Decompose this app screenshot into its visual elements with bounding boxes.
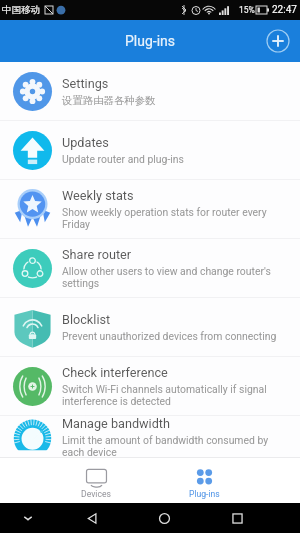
button[interactable]: Updates (0, 121, 300, 180)
staticText: Limit the amount of bandwidth consumed b… (62, 434, 286, 457)
button[interactable]: Recents (201, 512, 274, 525)
staticText: Allow other users to view and change rou… (62, 265, 286, 290)
button[interactable]: Settings (0, 62, 300, 121)
button[interactable]: Manage bandwidth (0, 416, 300, 457)
button[interactable]: Plug-ins (150, 463, 258, 499)
staticText: Blocklist (62, 312, 111, 327)
button[interactable]: Blocklist (0, 298, 300, 357)
staticText: Plug-ins (125, 33, 176, 49)
staticText: 15% (239, 5, 255, 15)
button[interactable]: Hide (0, 511, 56, 525)
staticText: 22:47 (272, 4, 297, 16)
staticText: Show weekly operation stats for router e… (62, 206, 286, 231)
button[interactable]: Back (56, 512, 128, 525)
staticText: Updates (62, 135, 109, 150)
staticText: Settings (62, 76, 109, 91)
button[interactable]: Devices (42, 463, 150, 499)
staticText: 设置路由器各种参数 (62, 94, 156, 107)
staticText: Prevent unauthorized devices from connec… (62, 330, 277, 342)
staticText: Devices (81, 489, 111, 499)
staticText: Switch Wi-Fi channels automatically if s… (62, 383, 286, 408)
staticText: Weekly stats (62, 188, 134, 203)
staticText: Plug-ins (189, 489, 220, 499)
staticText: 中国移动 (2, 4, 40, 16)
staticText: Share router (62, 247, 132, 262)
button[interactable]: Home (128, 512, 201, 525)
staticText: Manage bandwidth (62, 416, 170, 431)
button[interactable]: Check interference (0, 357, 300, 416)
staticText: Check interference (62, 365, 168, 380)
staticText: Update router and plug-ins (62, 153, 184, 165)
button[interactable]: Weekly stats (0, 180, 300, 239)
button[interactable]: Share router (0, 239, 300, 298)
button[interactable]: Add plug-in (263, 26, 293, 56)
